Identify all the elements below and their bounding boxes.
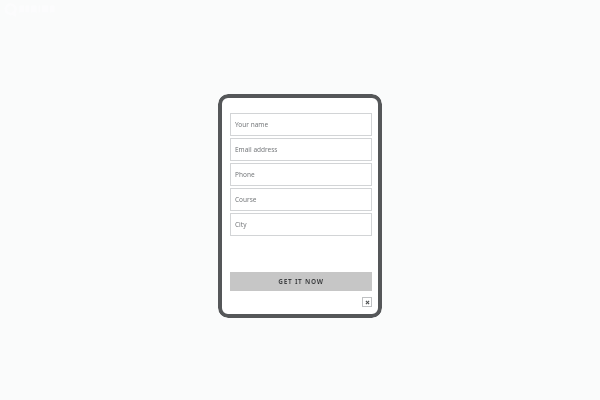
button[interactable]: City: [230, 213, 372, 236]
button[interactable]: Course: [230, 188, 372, 211]
button[interactable]: Email address: [230, 138, 372, 161]
staticText: Email address: [235, 145, 278, 154]
button[interactable]: Close: [362, 297, 372, 307]
staticText: GET IT NOW: [278, 277, 324, 286]
staticText: Course: [235, 195, 257, 204]
button[interactable]: GET IT NOW: [230, 272, 372, 291]
staticText: Phone: [235, 170, 255, 179]
button[interactable]: Your name: [230, 113, 372, 136]
staticText: Your name: [235, 120, 269, 129]
staticText: City: [235, 220, 247, 229]
button[interactable]: Phone: [230, 163, 372, 186]
